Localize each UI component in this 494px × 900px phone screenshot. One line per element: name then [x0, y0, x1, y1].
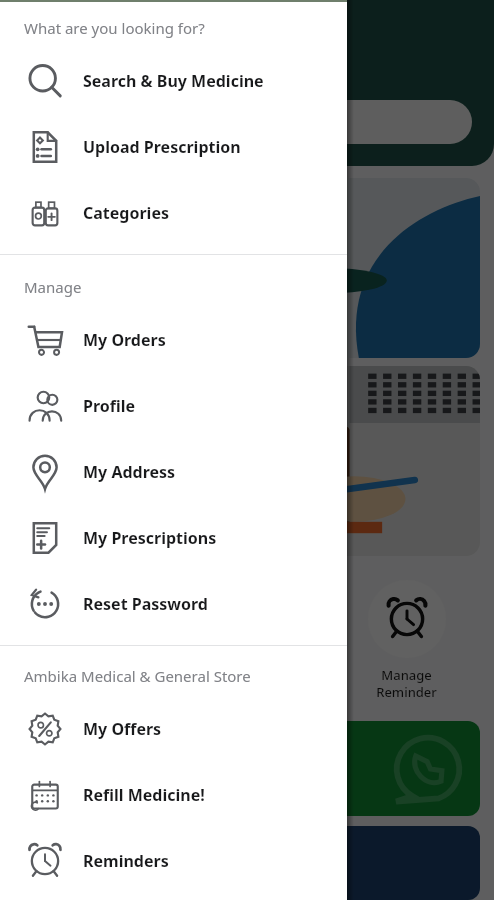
- button[interactable]: Quick Action: [168, 574, 327, 707]
- button[interactable]: Order on WhatsApp: [14, 721, 480, 816]
- button[interactable]: My Address: [0, 439, 347, 505]
- button[interactable]: Quick Action: [8, 574, 168, 707]
- staticText: Reminders: [83, 850, 169, 872]
- button[interactable]: Manage Reminder: [327, 574, 486, 707]
- button[interactable]: Categories: [0, 180, 347, 246]
- staticText: What are you looking for?: [24, 18, 205, 38]
- staticText: My Orders: [83, 329, 166, 351]
- staticText: Upload Prescription: [83, 136, 241, 158]
- staticText: Reset Password: [83, 593, 208, 615]
- staticText: My Prescriptions: [83, 527, 217, 549]
- button[interactable]: Profile: [0, 373, 347, 439]
- button[interactable]: [14, 826, 480, 900]
- staticText: Ambika Medical & General Store: [24, 666, 251, 686]
- staticText: Quick Action: [68, 666, 108, 701]
- button[interactable]: Refill Medicine!: [0, 762, 347, 828]
- button[interactable]: [14, 366, 480, 556]
- staticText: Search & Buy Medicine: [83, 70, 264, 92]
- staticText: My Offers: [83, 718, 162, 740]
- button[interactable]: My Orders: [0, 307, 347, 373]
- staticText: My Address: [83, 461, 176, 483]
- button[interactable]: Reminders: [0, 828, 347, 894]
- staticText: Quick Action: [228, 666, 268, 701]
- button[interactable]: [14, 178, 480, 358]
- staticText: Profile: [83, 395, 136, 417]
- button[interactable]: Search & Buy Medicine: [0, 48, 347, 114]
- button[interactable]: My Offers: [0, 696, 347, 762]
- staticText: Search medicine and otc ...: [40, 112, 229, 132]
- staticText: Manage Reminder: [376, 666, 437, 701]
- staticText: Refill Medicine!: [83, 784, 205, 806]
- button[interactable]: My Prescriptions: [0, 505, 347, 571]
- button[interactable]: Search medicine and otc ...: [22, 100, 472, 144]
- button[interactable]: Reset Password: [0, 571, 347, 637]
- button[interactable]: Upload Prescription: [0, 114, 347, 180]
- staticText: Categories: [83, 202, 169, 224]
- staticText: Manage: [24, 277, 82, 297]
